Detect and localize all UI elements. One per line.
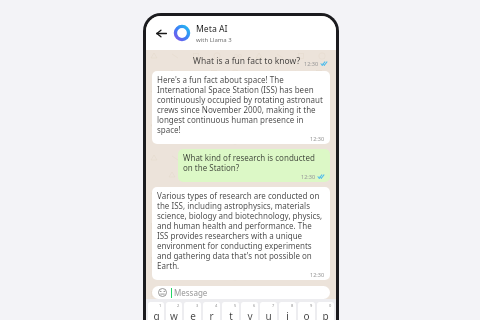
- button[interactable]: 4: [203, 302, 220, 320]
- staticText: w: [170, 309, 178, 320]
- staticText: y: [247, 309, 253, 320]
- button[interactable]: 0: [317, 302, 334, 320]
- button[interactable]: Message: [152, 286, 330, 299]
- staticText: 7: [272, 303, 275, 308]
- staticText: Various types of research are conducted …: [157, 190, 325, 271]
- button[interactable]: What kind of research is conducted on th…: [178, 149, 330, 182]
- staticText: p: [322, 309, 329, 320]
- staticText: 3: [196, 303, 199, 308]
- staticText: Message: [174, 287, 208, 298]
- staticText: i: [286, 309, 289, 320]
- staticText: 2: [177, 303, 180, 308]
- staticText: r: [209, 309, 214, 320]
- staticText: What kind of research is conducted on th…: [183, 152, 325, 173]
- staticText: 9: [310, 303, 313, 308]
- staticText: 4: [215, 303, 218, 308]
- button[interactable]: What is a fun fact to know?: [152, 55, 330, 67]
- staticText: with Llama 3: [196, 36, 232, 44]
- button[interactable]: 3: [184, 302, 201, 320]
- staticText: 12:30: [301, 173, 316, 180]
- button[interactable]: 8: [279, 302, 296, 320]
- button[interactable]: Here's a fun fact about space! The Inter…: [152, 71, 330, 144]
- button[interactable]: 1: [148, 302, 164, 320]
- staticText: t: [229, 309, 233, 320]
- staticText: What is a fun fact to know?: [193, 55, 301, 67]
- staticText: Here's a fun fact about space! The Inter…: [157, 74, 325, 135]
- staticText: 0: [329, 303, 332, 308]
- button[interactable]: Back: [153, 25, 169, 41]
- staticText: 12:30: [310, 135, 325, 142]
- staticText: u: [265, 309, 272, 320]
- staticText: e: [190, 309, 196, 320]
- button[interactable]: 9: [298, 302, 315, 320]
- staticText: 6: [253, 303, 256, 308]
- button[interactable]: 7: [260, 302, 277, 320]
- button[interactable]: Various types of research are conducted …: [152, 187, 330, 280]
- staticText: Meta AI: [196, 23, 228, 35]
- staticText: q: [153, 309, 160, 320]
- staticText: 1: [159, 303, 162, 308]
- staticText: o: [303, 309, 310, 320]
- staticText: 5: [234, 303, 237, 308]
- staticText: 8: [291, 303, 294, 308]
- button[interactable]: 6: [241, 302, 258, 320]
- staticText: 12:30: [304, 60, 319, 67]
- button[interactable]: 2: [166, 302, 182, 320]
- button[interactable]: 5: [222, 302, 239, 320]
- staticText: 12:30: [310, 271, 325, 278]
